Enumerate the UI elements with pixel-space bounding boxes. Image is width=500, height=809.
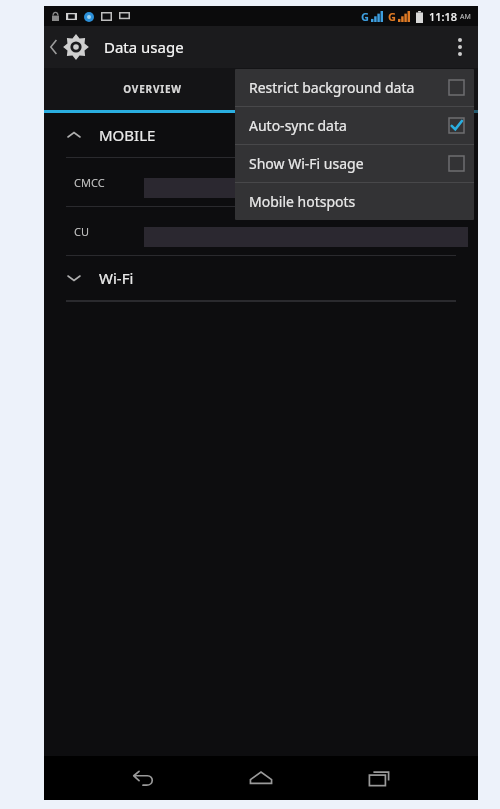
staticText: 0.00B <box>441 209 468 223</box>
staticText: MOBILE <box>99 125 156 145</box>
staticText: Restrict background data <box>249 78 415 97</box>
button[interactable]: Wi-Fi <box>44 256 478 300</box>
staticText: G <box>388 9 396 24</box>
button[interactable]: Show Wi-Fi usage <box>235 145 474 182</box>
staticText: Show Wi-Fi usage <box>249 154 364 173</box>
staticText: Mobile hotspots <box>249 192 356 211</box>
button[interactable]: Mobile hotspots <box>235 183 474 220</box>
button[interactable]: Recent apps <box>351 756 407 800</box>
staticText: 11:18 <box>429 9 458 24</box>
button[interactable]: Home <box>233 756 289 800</box>
button[interactable]: Restrict background data <box>235 69 474 106</box>
button[interactable]: Auto-sync data <box>235 107 474 144</box>
button[interactable]: Navigate up <box>44 26 96 68</box>
button[interactable]: OVERVIEW <box>44 68 260 110</box>
staticText: G <box>361 9 369 24</box>
button[interactable]: CU <box>44 207 478 255</box>
button[interactable]: CMCC <box>44 158 478 206</box>
staticText: Data usage <box>104 37 184 57</box>
button[interactable]: More options <box>442 26 478 68</box>
staticText: Auto-sync data <box>249 116 347 135</box>
button[interactable] <box>261 68 478 110</box>
button[interactable]: Back <box>115 756 171 800</box>
staticText: Wi-Fi <box>99 268 134 288</box>
staticText: OVERVIEW <box>123 82 182 96</box>
staticText: CU <box>74 224 89 239</box>
staticText: CMCC <box>74 175 105 190</box>
button[interactable]: MOBILE <box>44 113 478 157</box>
staticText: AM <box>460 12 471 22</box>
